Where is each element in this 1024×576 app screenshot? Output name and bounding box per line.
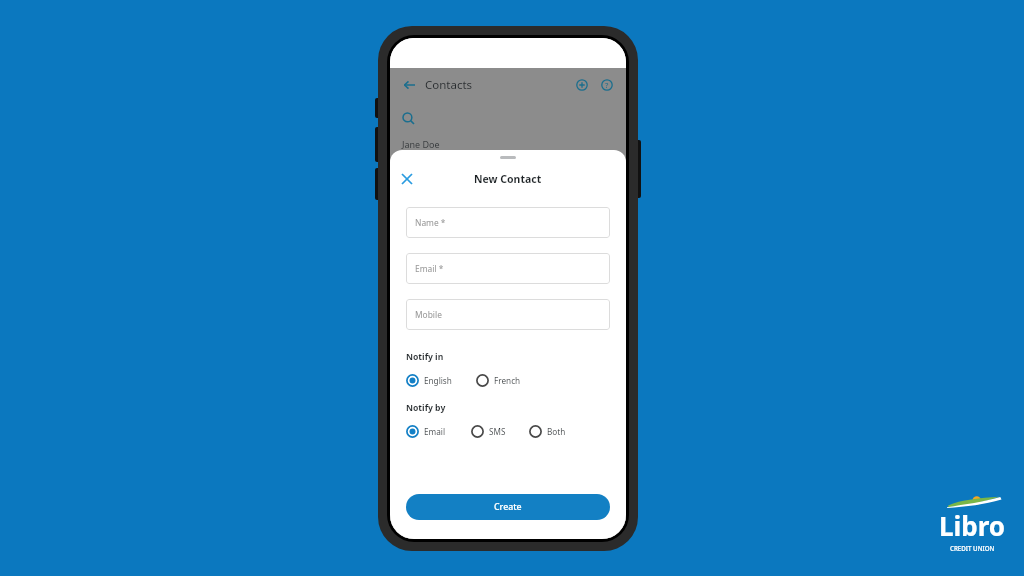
button[interactable]: Email * <box>406 253 610 284</box>
staticText: Create <box>494 501 522 513</box>
staticText: Both <box>547 426 566 437</box>
staticText: Mobile <box>415 309 442 320</box>
button[interactable]: Create <box>406 494 610 520</box>
staticText: SMS <box>489 426 506 437</box>
staticText: French <box>494 375 521 386</box>
button[interactable]: Help <box>599 77 615 93</box>
button[interactable]: Email <box>406 423 446 440</box>
button[interactable]: Back <box>401 77 417 93</box>
button[interactable]: Name * <box>406 207 610 238</box>
staticText: Notify by <box>406 402 446 414</box>
button[interactable]: SMS <box>471 423 506 440</box>
staticText: English <box>424 375 452 386</box>
button[interactable]: Add contact <box>574 77 590 93</box>
staticText: CREDIT UNION <box>950 544 995 552</box>
staticText: Email * <box>415 263 444 274</box>
button[interactable]: English <box>406 372 452 389</box>
button[interactable]: Close <box>398 170 416 188</box>
staticText: New Contact <box>474 172 542 186</box>
staticText: Libro <box>939 508 1006 543</box>
staticText: Notify in <box>406 351 444 363</box>
staticText: Name * <box>415 217 446 228</box>
button[interactable]: Search <box>402 101 626 135</box>
staticText: ? <box>605 80 609 90</box>
staticText: Jane Doe <box>402 138 440 150</box>
staticText: Contacts <box>425 77 473 93</box>
button[interactable]: Both <box>529 423 566 440</box>
button[interactable]: Mobile <box>406 299 610 330</box>
staticText: Email <box>424 426 446 437</box>
button[interactable]: French <box>476 372 521 389</box>
